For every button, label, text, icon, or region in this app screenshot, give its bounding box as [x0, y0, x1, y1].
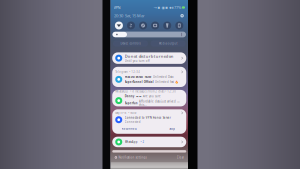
- staticText: Device controls: [120, 42, 140, 45]
- staticText: Notification settings: [118, 156, 146, 159]
- button[interactable]: Notification settings: [114, 156, 147, 159]
- staticText: Unlimited Data: [153, 75, 173, 79]
- button[interactable]: Device controls: [113, 40, 148, 47]
- button[interactable]: Reconnect: [122, 127, 137, 130]
- staticText: ▬▬ Are you sure: [136, 95, 161, 98]
- button[interactable]: WhatsApp: [112, 137, 186, 147]
- staticText: Clear: [177, 156, 184, 159]
- staticText: • 2: [140, 140, 144, 144]
- staticText: VPN: [113, 5, 120, 10]
- staticText: Connected: [125, 120, 141, 124]
- staticText: ◉: [161, 5, 164, 10]
- staticText: Media output: [159, 42, 178, 45]
- button[interactable]: Clear: [176, 156, 185, 159]
- staticText: ▮: [172, 6, 173, 9]
- button[interactable]: Easy VPN • Now: [112, 109, 186, 134]
- button[interactable]: Wi-Fi: [115, 21, 123, 30]
- staticText: ■: [157, 6, 160, 9]
- button[interactable]: Screen record: [151, 21, 159, 30]
- staticText: Unlimited fast 🔥: [155, 80, 178, 84]
- staticText: Telegram • 12:34: [115, 70, 140, 74]
- staticText: Easy VPN • Now: [115, 111, 136, 115]
- button[interactable]: Flashlight: [163, 21, 171, 30]
- staticText: Danny: [125, 95, 135, 98]
- staticText: 77%: [174, 5, 181, 10]
- staticText: Reconnect: [122, 127, 137, 130]
- staticText: WhatsApp: [125, 140, 138, 144]
- staticText: WhatsApp • 4 messages from 2 chats • 12:…: [115, 90, 176, 93]
- staticText: Stop: [169, 127, 175, 130]
- staticText: ■: [165, 6, 168, 9]
- staticText: Until you turn off: [125, 59, 150, 63]
- staticText: →: [154, 5, 157, 10]
- staticText: SuperTunnel Official: [125, 80, 154, 84]
- button[interactable]: Settings: [180, 13, 185, 18]
- staticText: FREE INTERNET NOW: [125, 75, 152, 79]
- button[interactable]: Bluetooth: [127, 21, 135, 30]
- staticText: 20:30 Sat, 15 Mar: [114, 13, 145, 18]
- button[interactable]: Do not disturb: [139, 21, 147, 30]
- button[interactable]: Media output: [151, 40, 186, 47]
- staticText: Superfun: [125, 101, 138, 105]
- button[interactable]: WhatsApp • 4 messages from 2 chats • 12:…: [112, 90, 186, 106]
- button[interactable]: Stop: [169, 127, 175, 130]
- button[interactable]: Battery saver: [175, 21, 183, 30]
- staticText: Connected to VPN France Server: [125, 116, 171, 119]
- button[interactable]: Do not disturb turned on: [112, 52, 186, 64]
- staticText: Do not disturb turned on: [125, 53, 174, 59]
- button[interactable]: Telegram • 12:34: [112, 67, 186, 87]
- staticText: ●: [169, 6, 171, 9]
- staticText: Affordable data just arrived — this...: [139, 100, 180, 107]
